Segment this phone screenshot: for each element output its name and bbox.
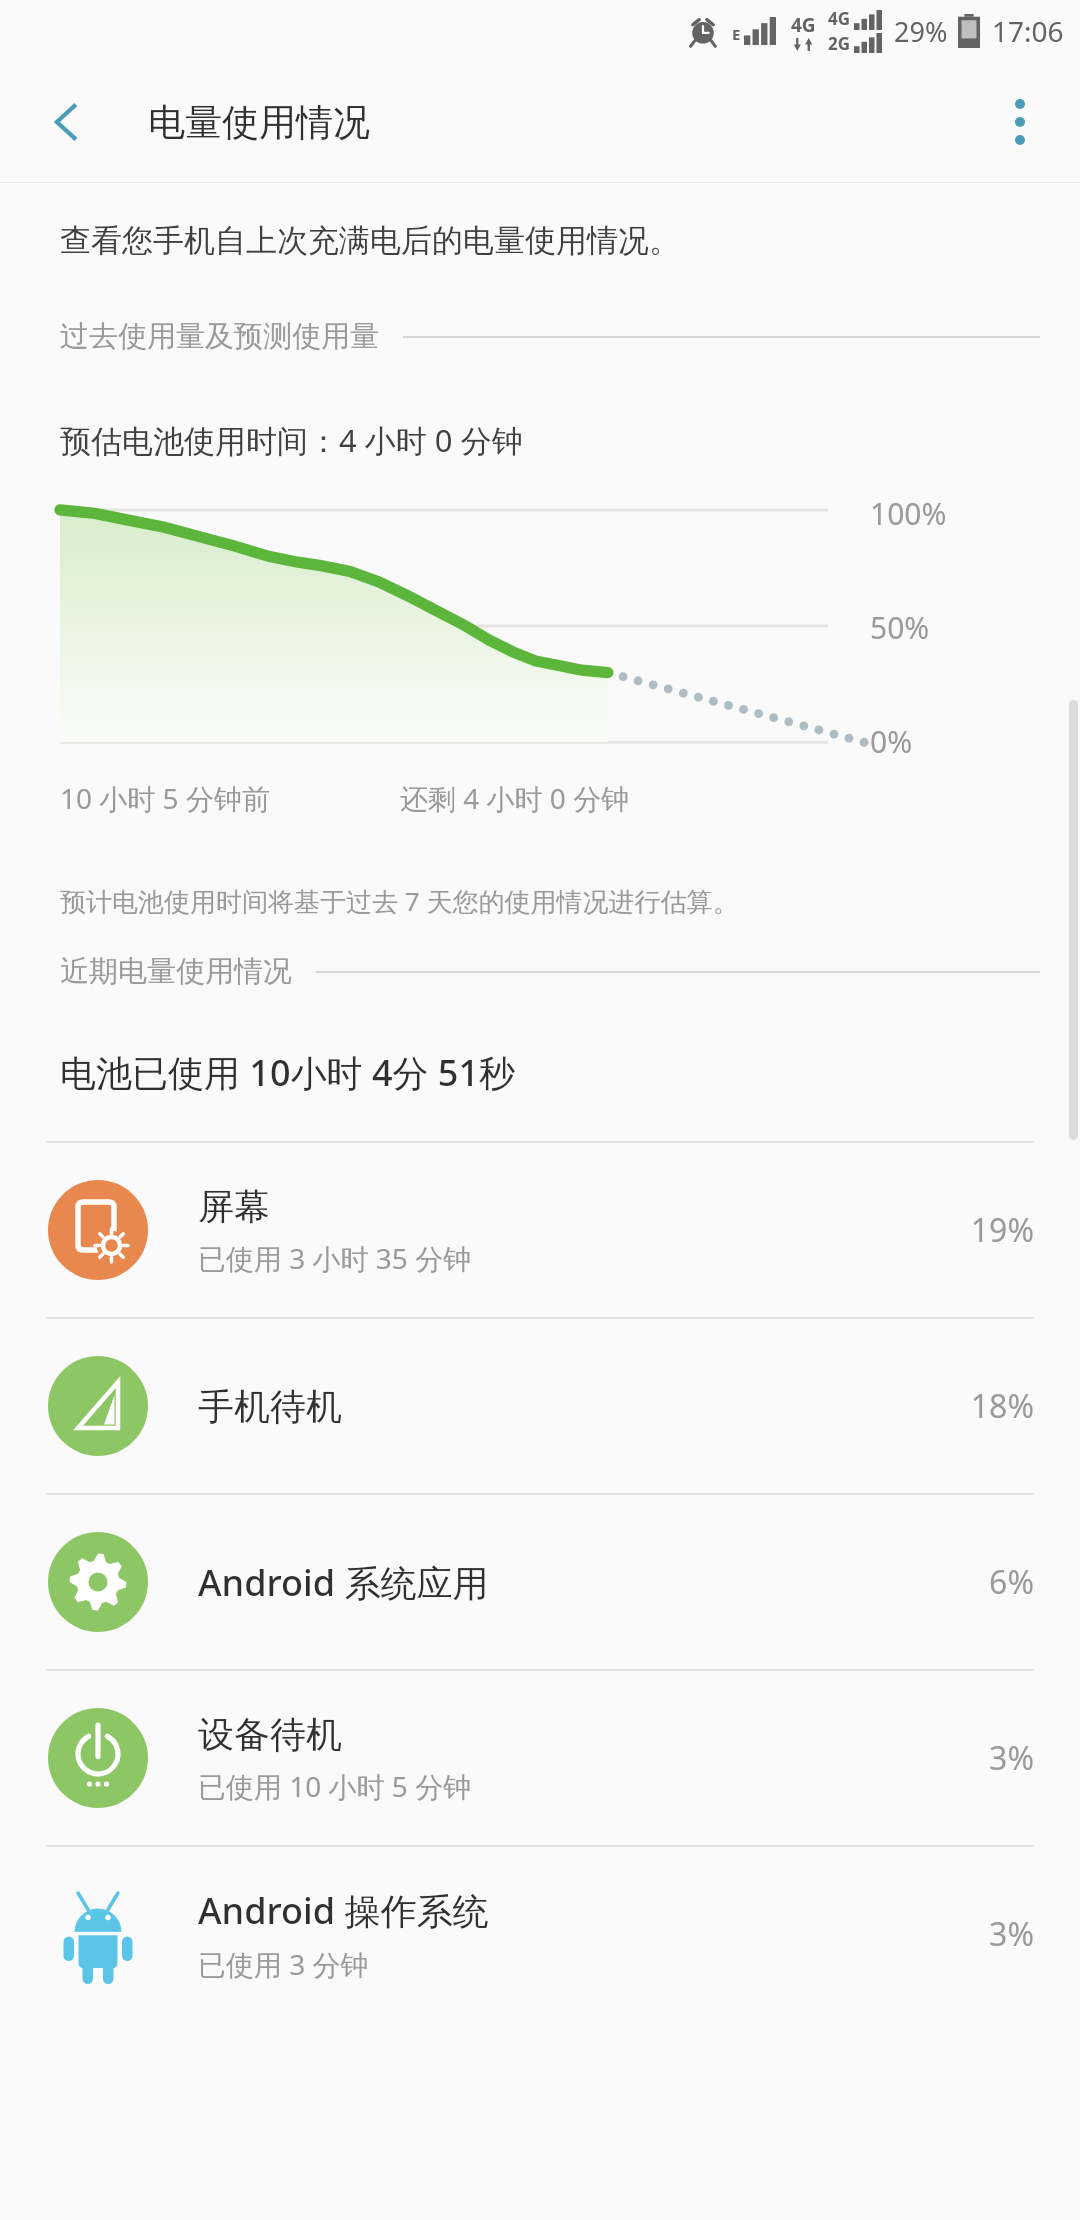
button[interactable]: 手机待机 [0, 1319, 1080, 1493]
staticText: 4G [828, 7, 851, 30]
staticText: 还剩 4 小时 0 分钟 [400, 779, 630, 817]
staticText: 0% [870, 721, 913, 762]
staticText: E [732, 24, 741, 44]
staticText: Android 操作系统 [198, 1886, 489, 1935]
staticText: 2G [828, 32, 851, 55]
button[interactable]: Android 系统应用 [0, 1495, 1080, 1669]
staticText: 19% [970, 1208, 1034, 1252]
staticText: 电量使用情况 [148, 99, 370, 146]
staticText: 查看您手机自上次充满电后的电量使用情况。 [60, 221, 680, 260]
button[interactable]: Android 操作系统 [0, 1847, 1080, 2021]
staticText: 过去使用量及预测使用量 [60, 318, 379, 355]
staticText: 手机待机 [198, 1384, 342, 1429]
staticText: 预估电池使用时间：4 小时 0 分钟 [60, 419, 523, 461]
staticText: 预计电池使用时间将基于过去 7 天您的使用情况进行估算。 [60, 883, 739, 919]
staticText: 10 小时 5 分钟前 [60, 779, 270, 817]
staticText: 近期电量使用情况 [60, 953, 292, 990]
staticText: 18% [970, 1384, 1034, 1428]
staticText: 屏幕 [198, 1184, 270, 1229]
staticText: 17:06 [992, 12, 1064, 50]
staticText: 已使用 3 分钟 [198, 1945, 369, 1983]
staticText: 设备待机 [198, 1712, 342, 1757]
staticText: 3% [989, 1736, 1034, 1780]
staticText: 100% [870, 493, 947, 534]
staticText: 50% [870, 607, 930, 648]
staticText: 3% [989, 1912, 1034, 1956]
staticText: 已使用 3 小时 35 分钟 [198, 1239, 472, 1277]
staticText: 6% [989, 1560, 1034, 1604]
staticText: Android 系统应用 [198, 1558, 489, 1607]
staticText: 29% [894, 13, 948, 50]
staticText: 4G [791, 12, 816, 38]
button[interactable]: More options [978, 80, 1062, 164]
staticText: 已使用 10 小时 5 分钟 [198, 1767, 472, 1805]
button[interactable]: 设备待机 [0, 1671, 1080, 1845]
button[interactable]: Back [24, 80, 108, 164]
staticText: 电池已使用 10小时 4分 51秒 [60, 1048, 516, 1097]
button[interactable]: 屏幕 [0, 1143, 1080, 1317]
